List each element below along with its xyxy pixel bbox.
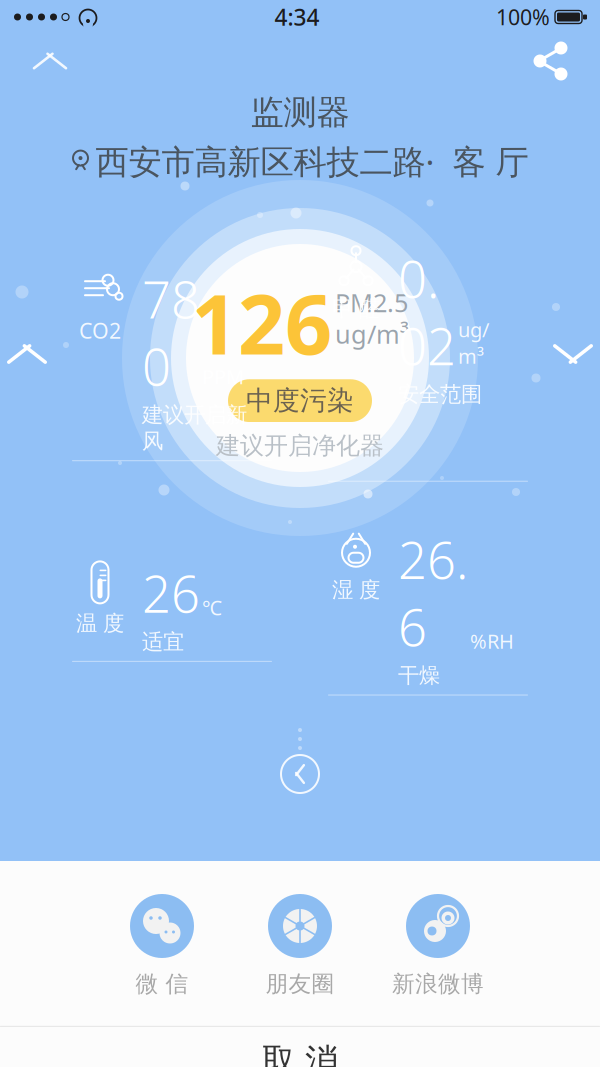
staticText: 甲 醛 [332,296,380,322]
staticText: ℃ [202,594,222,621]
staticText: 中度污染 [246,384,354,417]
button[interactable]: Share [524,35,576,87]
button[interactable]: 甲 醛 [328,245,528,482]
button[interactable]: 微 信 [107,894,217,998]
button[interactable]: Previous device [0,327,54,381]
staticText: 取 消 [262,1040,338,1067]
staticText: 26 [142,559,200,627]
staticText: ug/m³ [335,317,409,351]
button[interactable]: 取 消 [0,1027,600,1067]
staticText: 安全范围 [398,381,482,407]
staticText: CO2 [79,316,121,344]
staticText: 建议开启净化器 [216,431,384,460]
button[interactable]: Next device [546,327,600,381]
staticText: 建议开启新风 [142,402,247,454]
staticText: 780 [142,265,200,400]
button[interactable]: Refresh [270,721,330,799]
staticText: 监测器 [250,92,349,133]
button[interactable]: CO2 [72,265,272,461]
staticText: 100% [496,3,550,31]
staticText: 26.6 [398,526,468,660]
staticText: 适宜 [142,629,184,655]
staticText: 新浪微博 [392,970,484,998]
staticText: 西安市高新区科技二路· 客 厅 [95,139,528,183]
staticText: PPM [202,363,244,390]
staticText: PM2.5 [335,285,408,319]
button[interactable]: 湿 度 [328,526,528,695]
staticText: 干燥 [398,662,440,688]
staticText: %RH [470,628,514,654]
staticText: 0.02 [398,245,456,379]
button[interactable]: 朋友圈 [245,894,355,998]
staticText: ug/m³ [458,316,489,369]
button[interactable]: Back [24,35,76,87]
staticText: 湿 度 [332,577,380,603]
staticText: 温 度 [76,610,124,637]
button[interactable]: 温 度 [72,559,272,662]
staticText: 4:34 [274,2,319,32]
staticText: 微 信 [135,970,188,998]
staticText: 126 [191,267,332,377]
staticText: 朋友圈 [265,970,334,998]
button[interactable]: 新浪微博 [383,894,493,998]
